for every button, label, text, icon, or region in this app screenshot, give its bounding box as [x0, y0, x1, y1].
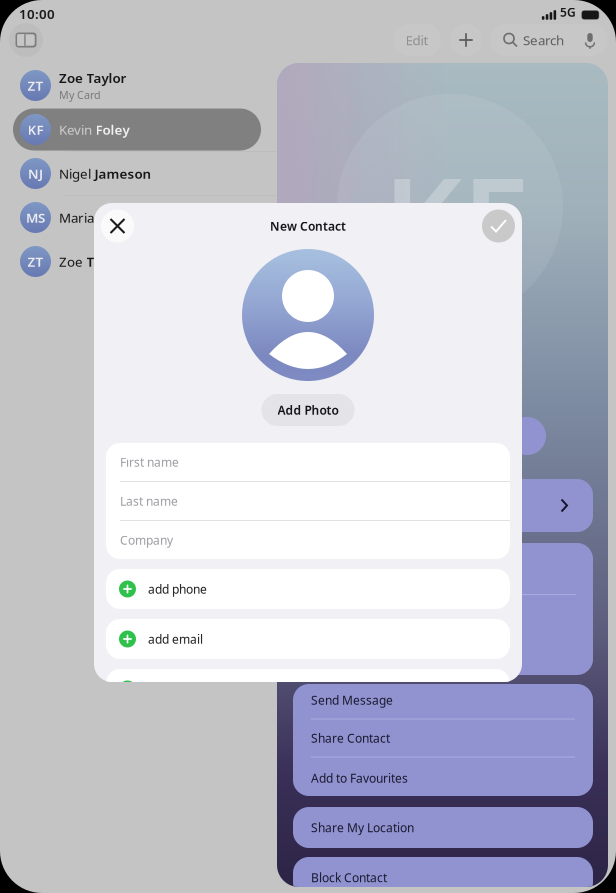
button[interactable]: Search: [490, 24, 608, 56]
staticText: Foley: [95, 121, 129, 138]
staticText: MS: [26, 209, 45, 226]
staticText: Maria: [59, 209, 94, 226]
staticText: Taylor: [86, 253, 126, 270]
staticText: Block Contact: [311, 869, 387, 885]
staticText: Zoe: [59, 69, 83, 87]
button[interactable]: NJ: [0, 152, 276, 195]
button[interactable]: Send Message: [293, 681, 593, 718]
button[interactable]: Add to Favourites: [293, 757, 593, 798]
staticText: Edit: [405, 31, 428, 49]
staticText: Add to Favourites: [311, 770, 408, 786]
button[interactable]: MS: [0, 196, 276, 239]
staticText: New Contact: [270, 218, 346, 234]
staticText: add email: [148, 631, 203, 647]
button[interactable]: Done: [482, 209, 515, 242]
button[interactable]: ZT: [0, 64, 276, 107]
staticText: NJ: [28, 165, 43, 182]
button[interactable]: Edit: [393, 24, 441, 56]
button[interactable]: KF: [0, 108, 276, 151]
staticText: 5G: [560, 4, 576, 20]
staticText: Smith: [97, 209, 135, 226]
staticText: add url: [148, 681, 187, 697]
button[interactable]: Block Contact: [293, 857, 593, 893]
button[interactable]: ZT: [0, 240, 276, 283]
button[interactable]: Share My Location: [293, 807, 593, 848]
staticText: ZT: [27, 77, 43, 94]
staticText: add phone: [148, 581, 207, 597]
staticText: 10:00: [19, 5, 55, 23]
button[interactable]: Share Contact: [293, 719, 593, 756]
button[interactable]: add phone: [106, 569, 510, 609]
button[interactable]: Close: [101, 209, 134, 242]
staticText: Nigel: [59, 165, 91, 182]
button[interactable]: Toggle Sidebar: [9, 23, 43, 57]
button[interactable]: Add Contact: [450, 24, 482, 56]
staticText: ZT: [27, 253, 43, 270]
staticText: Taylor: [86, 69, 126, 87]
button[interactable]: add url: [106, 669, 510, 709]
staticText: Last name: [120, 493, 178, 509]
staticText: Search: [523, 31, 564, 49]
staticText: Share Contact: [311, 730, 390, 746]
staticText: Jameson: [94, 165, 151, 182]
staticText: First name: [120, 454, 179, 470]
staticText: Send Message: [311, 692, 393, 708]
button[interactable]: add email: [106, 619, 510, 659]
staticText: Share My Location: [311, 819, 414, 835]
staticText: Zoe: [59, 253, 83, 270]
staticText: Kevin: [59, 121, 92, 138]
button[interactable]: Add Photo: [261, 394, 354, 426]
staticText: My Card: [59, 88, 101, 102]
staticText: KF: [27, 121, 43, 138]
staticText: Add Photo: [277, 402, 338, 418]
staticText: Company: [120, 532, 173, 548]
staticText: KF: [383, 138, 528, 301]
